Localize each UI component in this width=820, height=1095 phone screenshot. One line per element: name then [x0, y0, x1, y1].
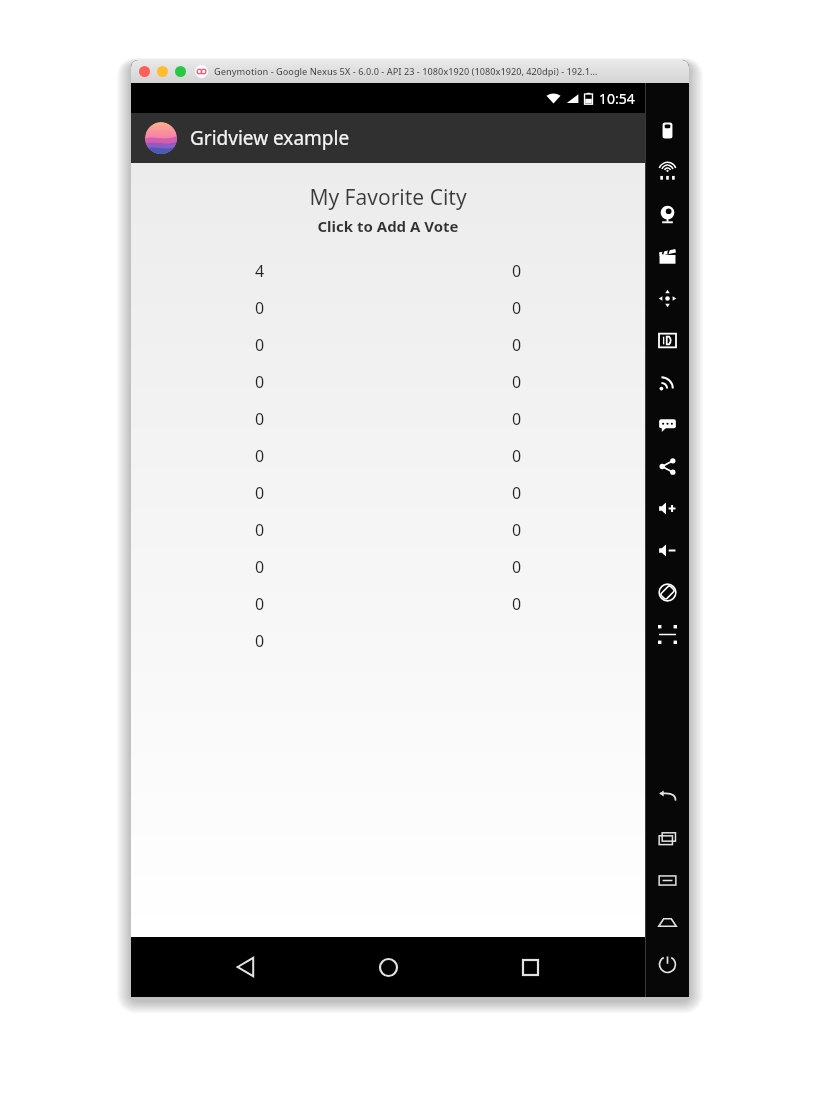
staticText: 0: [512, 260, 522, 282]
staticText: 0: [255, 371, 265, 393]
button[interactable]: Menu: [646, 859, 689, 901]
staticText: 0: [512, 334, 522, 356]
staticText: 0: [255, 334, 265, 356]
button[interactable]: Rotate: [646, 571, 689, 613]
staticText: 10:54: [599, 89, 635, 108]
button[interactable]: 0: [388, 474, 645, 511]
staticText: 0: [512, 593, 522, 615]
button[interactable]: Volume up: [646, 487, 689, 529]
button[interactable]: Scale 1:1: [646, 613, 689, 655]
staticText: 0: [512, 445, 522, 467]
staticText: 0: [255, 297, 265, 319]
button[interactable]: 0: [131, 363, 388, 400]
staticText: 0: [512, 408, 522, 430]
button[interactable]: Identifiers: [646, 319, 689, 361]
button[interactable]: 4: [131, 252, 388, 289]
staticText: 4: [255, 260, 265, 282]
button[interactable]: 0: [388, 585, 645, 622]
staticText: Gridview example: [190, 125, 350, 151]
staticText: 0: [512, 519, 522, 541]
staticText: Genymotion - Google Nexus 5X - 6.0.0 - A…: [214, 65, 598, 78]
staticText: 0: [512, 297, 522, 319]
staticText: 0: [512, 556, 522, 578]
button[interactable]: Network: [646, 361, 689, 403]
button[interactable]: Camera: [646, 193, 689, 235]
button[interactable]: Recents: [503, 940, 557, 994]
staticText: Click to Add A Vote: [131, 216, 645, 236]
button[interactable]: 0: [131, 437, 388, 474]
staticText: 0: [255, 556, 265, 578]
button[interactable]: 0: [388, 252, 645, 289]
button[interactable]: Share: [646, 445, 689, 487]
button[interactable]: Battery: [646, 109, 689, 151]
button[interactable]: 0: [388, 363, 645, 400]
staticText: 0: [255, 519, 265, 541]
button[interactable]: 0: [388, 548, 645, 585]
button[interactable]: 0: [131, 548, 388, 585]
button[interactable]: 0: [388, 289, 645, 326]
staticText: 0: [512, 371, 522, 393]
button[interactable]: 0: [131, 622, 388, 659]
button[interactable]: 0: [131, 585, 388, 622]
button[interactable]: 0: [388, 400, 645, 437]
button[interactable]: Home: [361, 940, 415, 994]
button[interactable]: 0: [131, 326, 388, 363]
staticText: 0: [255, 408, 265, 430]
button[interactable]: Home: [646, 901, 689, 943]
button[interactable]: 0: [131, 474, 388, 511]
staticText: 0: [255, 482, 265, 504]
button[interactable]: Move: [646, 277, 689, 319]
button[interactable]: Messages: [646, 403, 689, 445]
button[interactable]: 0: [131, 289, 388, 326]
button[interactable]: GPS: [646, 151, 689, 193]
button[interactable]: Video: [646, 235, 689, 277]
button[interactable]: 0: [388, 326, 645, 363]
staticText: 0: [512, 482, 522, 504]
staticText: 0: [255, 593, 265, 615]
button[interactable]: Recents: [646, 817, 689, 859]
button[interactable]: 0: [131, 511, 388, 548]
button[interactable]: Power: [646, 943, 689, 985]
button[interactable]: 0: [388, 437, 645, 474]
button[interactable]: App icon: [145, 122, 177, 154]
staticText: 0: [255, 445, 265, 467]
staticText: My Favorite City: [131, 183, 645, 212]
button[interactable]: Back: [219, 940, 273, 994]
button[interactable]: 0: [131, 400, 388, 437]
button[interactable]: 0: [388, 511, 645, 548]
button[interactable]: Volume down: [646, 529, 689, 571]
staticText: 0: [255, 630, 265, 652]
button[interactable]: Back: [646, 775, 689, 817]
